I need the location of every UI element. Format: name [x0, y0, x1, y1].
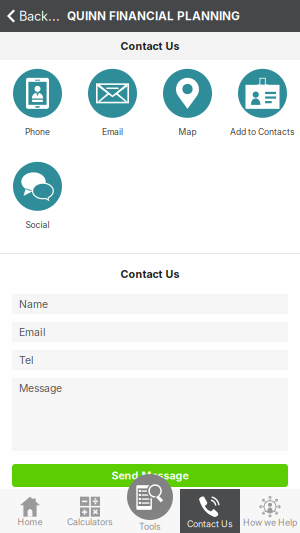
- staticText: Social: [25, 220, 49, 230]
- staticText: Add to Contacts: [230, 127, 295, 137]
- staticText: Back...: [19, 8, 60, 24]
- button[interactable]: Social: [0, 161, 75, 231]
- staticText: Calculators: [67, 517, 113, 527]
- staticText: Home: [17, 517, 42, 527]
- staticText: Contact Us: [120, 39, 179, 52]
- button[interactable]: Phone: [0, 68, 75, 138]
- staticText: Tools: [139, 521, 161, 532]
- staticText: Email: [19, 326, 46, 339]
- staticText: Name: [19, 298, 48, 311]
- button[interactable]: Home: [0, 489, 60, 533]
- button[interactable]: Tools: [127, 474, 173, 520]
- button[interactable]: Send Message: [12, 464, 288, 487]
- staticText: Map: [178, 127, 196, 137]
- staticText: Send Message: [111, 469, 188, 482]
- staticText: How we Help: [243, 517, 297, 528]
- staticText: Contact Us: [187, 519, 233, 529]
- button[interactable]: Email: [75, 68, 150, 138]
- button[interactable]: Add to Contacts: [225, 68, 300, 138]
- staticText: Email: [102, 127, 123, 137]
- button[interactable]: Map: [150, 68, 225, 138]
- staticText: Tel: [19, 354, 34, 367]
- staticText: Contact Us: [120, 267, 179, 280]
- button[interactable]: Back...: [0, 0, 60, 32]
- staticText: Message: [19, 382, 62, 395]
- staticText: Phone: [25, 127, 50, 137]
- button[interactable]: Tools: [120, 489, 180, 533]
- button[interactable]: How we Help: [240, 489, 300, 533]
- button[interactable]: Calculators: [60, 489, 120, 533]
- button[interactable]: Contact Us: [180, 489, 240, 533]
- staticText: QUINN FINANCIAL PLANNING: [67, 9, 240, 23]
